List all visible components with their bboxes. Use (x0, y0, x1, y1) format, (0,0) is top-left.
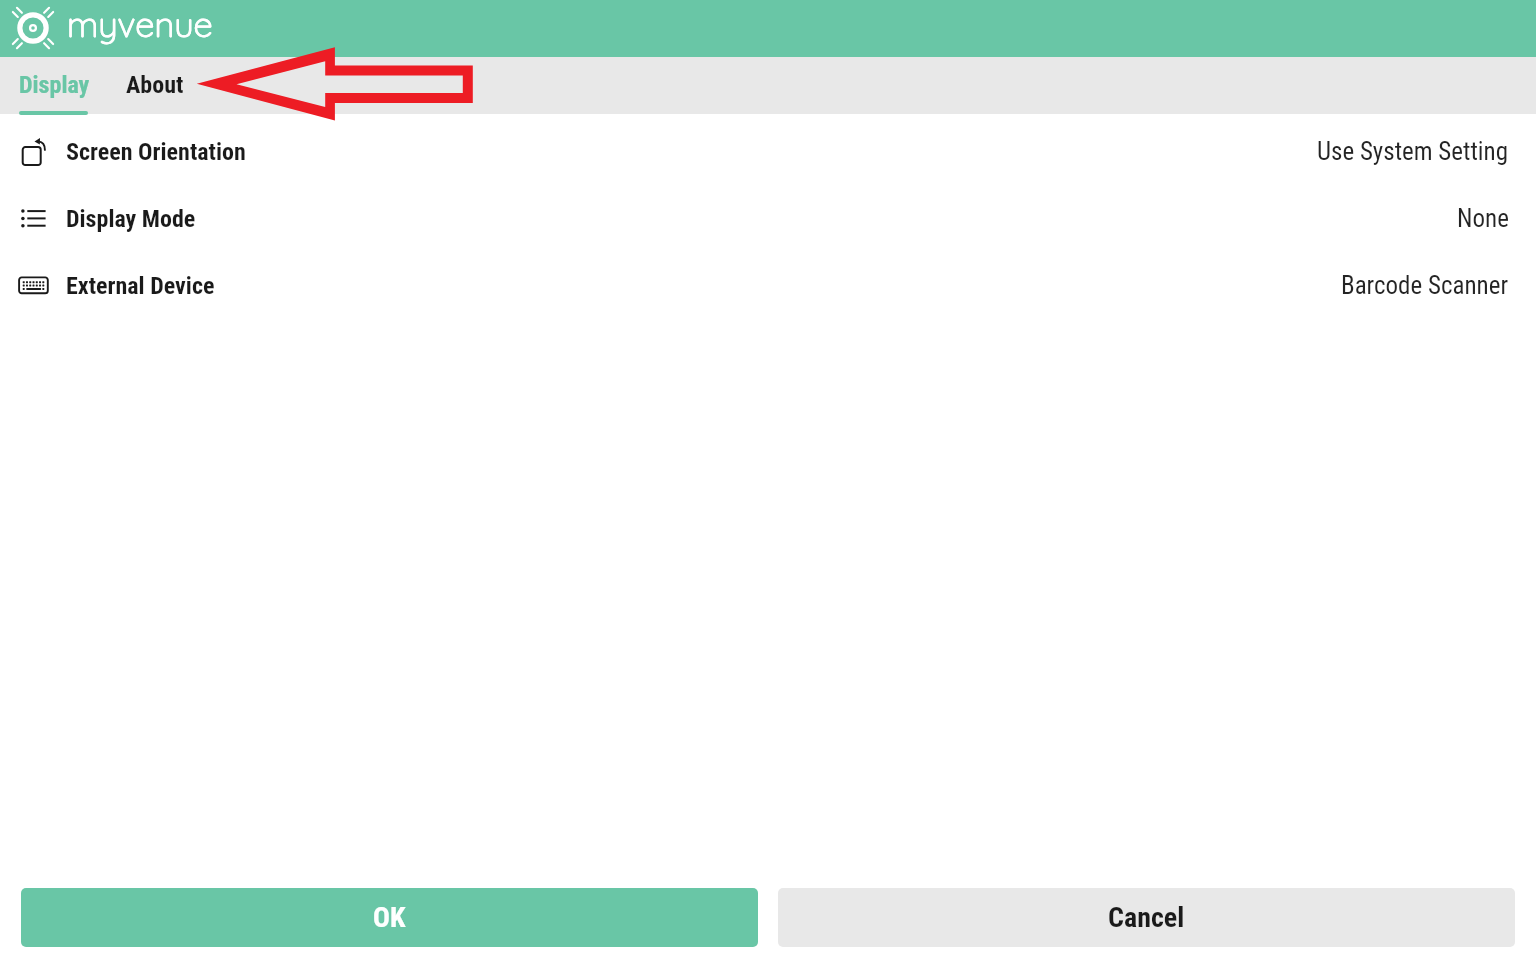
staticText: Cancel (1108, 901, 1185, 934)
staticText: Display Mode (66, 205, 196, 233)
staticText: Screen Orientation (66, 138, 246, 166)
other: myvenue (11, 6, 55, 50)
button[interactable]: Cancel (778, 888, 1515, 947)
staticText: About (126, 71, 184, 99)
staticText: External Device (66, 272, 215, 300)
other: Display mode (18, 204, 48, 234)
staticText: Use System Setting (1317, 137, 1509, 166)
other: External device (18, 271, 48, 301)
button[interactable]: OK (21, 888, 758, 947)
button[interactable]: Screen orientation (0, 118, 1536, 185)
staticText: myvenue (67, 2, 213, 45)
button[interactable]: Display (0, 57, 108, 114)
staticText: OK (373, 901, 406, 934)
button[interactable]: Display mode (0, 185, 1536, 252)
staticText: myvenue (67, 2, 213, 45)
staticText: Display (19, 71, 90, 99)
staticText: Barcode Scanner (1341, 271, 1509, 300)
other: Screen orientation (18, 137, 48, 167)
button[interactable]: External device (0, 252, 1536, 319)
button[interactable]: About (108, 57, 202, 114)
staticText: None (1457, 204, 1509, 233)
